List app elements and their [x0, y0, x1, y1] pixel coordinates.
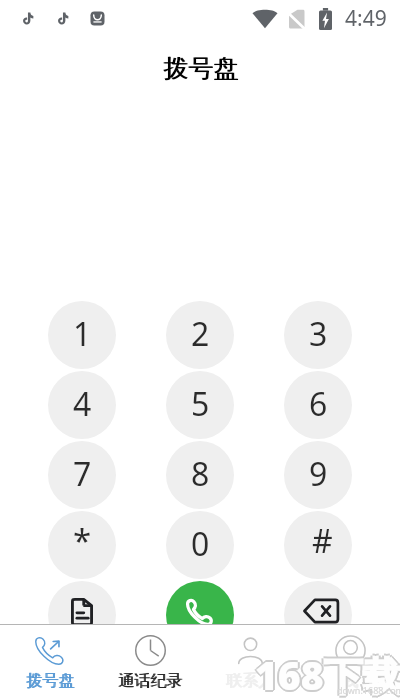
button[interactable]: 3 [284, 301, 352, 369]
staticText: 拨号盘 [164, 53, 239, 84]
staticText: 168下载 [255, 648, 400, 700]
button[interactable]: 0 [166, 511, 234, 579]
button[interactable]: 5 [166, 371, 234, 439]
button[interactable]: 7 [48, 441, 116, 509]
staticText: 我 [342, 671, 358, 691]
staticText: # [312, 519, 333, 563]
staticText: 我 [343, 671, 359, 691]
button[interactable]: 2 [166, 301, 234, 369]
staticText: 通话纪录 [119, 671, 183, 691]
button[interactable]: 6 [284, 371, 352, 439]
staticText: 4:49 [345, 4, 387, 33]
button[interactable]: * [48, 511, 116, 579]
staticText: 168下载 [255, 650, 400, 700]
staticText: 联系人 [226, 671, 274, 691]
button[interactable]: 拨号盘 [0, 625, 100, 691]
staticText: 7 [73, 452, 92, 496]
staticText: 168下载 [253, 648, 400, 700]
button[interactable]: Delete [284, 581, 352, 649]
staticText: 168下载 [256, 649, 400, 700]
button[interactable]: Notes [48, 581, 116, 649]
staticText: 4 [73, 382, 92, 426]
staticText: 2 [191, 312, 210, 356]
staticText: 联系人 [227, 671, 275, 691]
button[interactable]: 联系人 [200, 625, 300, 691]
button[interactable]: 4 [48, 371, 116, 439]
staticText: 168下载 [255, 646, 400, 699]
button[interactable]: 1 [48, 301, 116, 369]
button[interactable]: Call [166, 581, 234, 649]
staticText: 3 [309, 312, 328, 356]
button[interactable]: 我 [300, 625, 400, 691]
staticText: 9 [309, 452, 328, 496]
button[interactable]: 9 [284, 441, 352, 509]
staticText: 168下载 [257, 648, 400, 700]
staticText: 8 [191, 452, 210, 496]
button[interactable]: 8 [166, 441, 234, 509]
staticText: down.1688.com [337, 684, 400, 696]
staticText: 拨号盘 [163, 53, 238, 84]
staticText: 拨号盘 [27, 671, 75, 691]
button[interactable]: 通话纪录 [100, 625, 200, 691]
staticText: 0 [191, 522, 210, 566]
staticText: 1 [73, 312, 92, 356]
staticText: 5 [191, 382, 210, 426]
staticText: 通话纪录 [118, 671, 182, 691]
staticText: 6 [309, 382, 328, 426]
button[interactable]: # [284, 511, 352, 579]
staticText: * [73, 518, 92, 563]
staticText: 拨号盘 [26, 671, 74, 691]
